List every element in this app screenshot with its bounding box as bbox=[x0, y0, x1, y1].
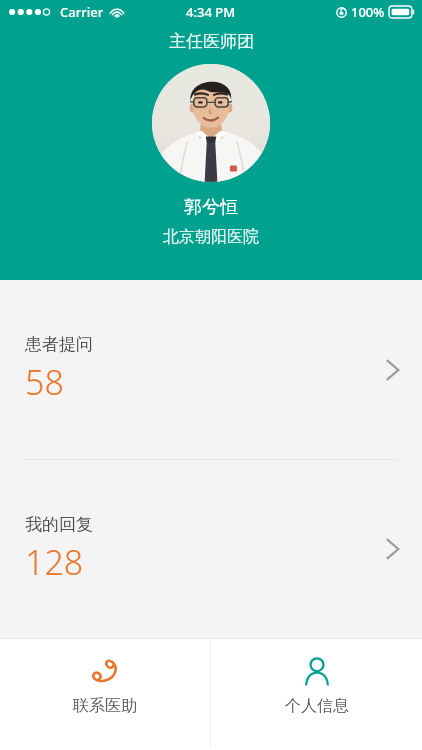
button[interactable]: 患者提问 bbox=[0, 280, 422, 459]
staticText: 患者提问 bbox=[25, 334, 93, 355]
staticText: 北京朝阳医院 bbox=[163, 227, 259, 247]
staticText: 联系医助 bbox=[73, 696, 137, 716]
staticText: 我的回复 bbox=[25, 514, 93, 535]
other: 个人信息 bbox=[302, 656, 332, 686]
staticText: 58 bbox=[25, 359, 64, 405]
button[interactable]: 个人信息 bbox=[211, 638, 422, 750]
staticText: 郭兮恒 bbox=[184, 196, 238, 219]
staticText: Carrier bbox=[60, 3, 104, 21]
staticText: 个人信息 bbox=[285, 696, 349, 716]
button[interactable]: 联系医助 bbox=[0, 638, 210, 750]
staticText: 128 bbox=[25, 539, 84, 585]
other: 联系医助 bbox=[90, 656, 120, 686]
staticText: 4:34 PM bbox=[186, 3, 236, 21]
staticText: 主任医师团 bbox=[169, 31, 254, 52]
button[interactable]: 我的回复 bbox=[0, 460, 422, 638]
staticText: 100% bbox=[351, 3, 385, 21]
